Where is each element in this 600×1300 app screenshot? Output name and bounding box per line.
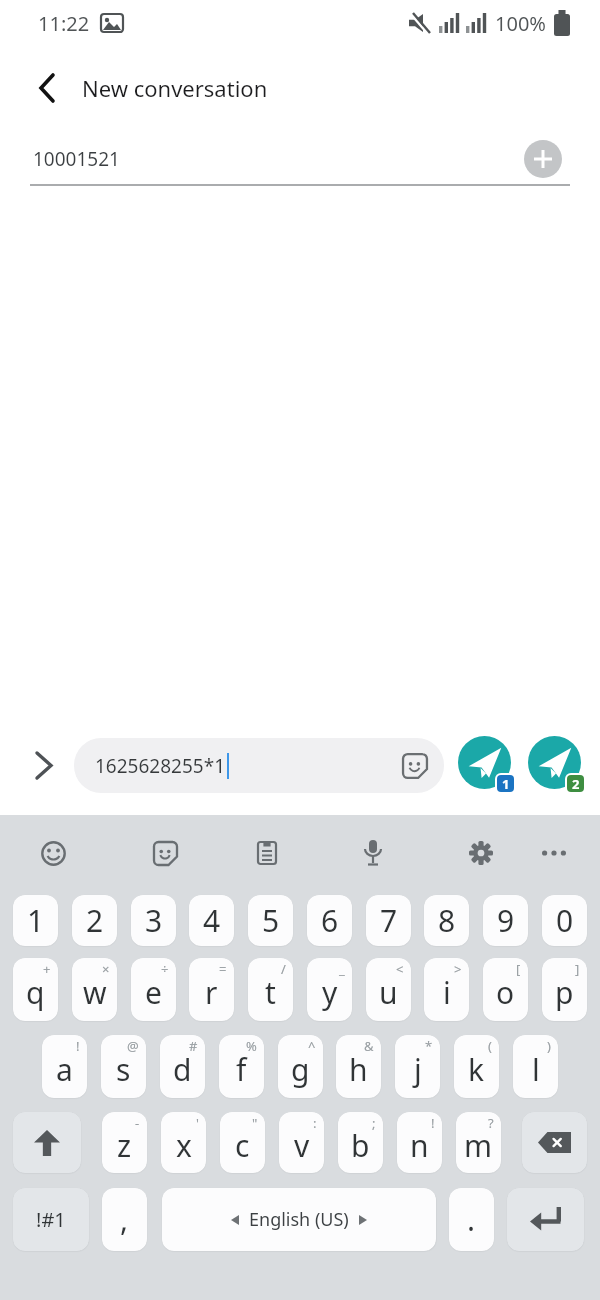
button[interactable]: & [336, 1035, 381, 1098]
staticText: r [205, 972, 218, 1013]
button[interactable]: 1625628255*1 [74, 738, 444, 793]
button[interactable]: 3 [131, 895, 176, 946]
staticText: f [236, 1049, 247, 1090]
button[interactable]: 2 [528, 736, 586, 794]
staticText: . [467, 1199, 476, 1240]
button[interactable]: " [220, 1112, 265, 1173]
button[interactable]: ! [397, 1112, 442, 1173]
button[interactable] [532, 831, 576, 875]
staticText: - [135, 1114, 140, 1132]
button[interactable] [507, 1188, 584, 1251]
staticText: c [235, 1125, 250, 1166]
button[interactable] [522, 1112, 587, 1173]
staticText: 7 [380, 900, 398, 941]
button[interactable] [13, 1112, 81, 1173]
button[interactable]: × [72, 958, 117, 1021]
button[interactable]: 2 [72, 895, 117, 946]
staticText: > [454, 960, 462, 978]
staticText: 9 [497, 900, 515, 941]
button[interactable]: 1 [13, 895, 58, 946]
staticText: t [265, 972, 276, 1013]
button[interactable] [25, 66, 69, 110]
staticText: 11:22 [38, 10, 90, 37]
staticText: : [313, 1114, 317, 1132]
button[interactable]: . [449, 1188, 494, 1251]
staticText: ^ [308, 1037, 316, 1055]
button[interactable]: < [366, 958, 411, 1021]
staticText: g [291, 1049, 310, 1090]
button[interactable] [143, 831, 187, 875]
staticText: m [464, 1125, 493, 1166]
staticText: 1 [502, 775, 510, 792]
button[interactable]: , [102, 1188, 147, 1251]
staticText: w [83, 972, 107, 1013]
button[interactable] [26, 747, 62, 783]
button[interactable] [524, 140, 562, 178]
button[interactable]: - [102, 1112, 147, 1173]
button[interactable]: ÷ [131, 958, 176, 1021]
button[interactable]: !#1 [13, 1188, 89, 1251]
button[interactable]: > [424, 958, 469, 1021]
staticText: h [349, 1049, 368, 1090]
staticText: !#1 [36, 1206, 66, 1233]
button[interactable]: 9 [483, 895, 528, 946]
staticText: _ [339, 960, 345, 978]
staticText: ) [547, 1037, 551, 1055]
staticText: & [364, 1037, 374, 1055]
button[interactable]: : [279, 1112, 324, 1173]
button[interactable]: ; [338, 1112, 383, 1173]
button[interactable]: / [248, 958, 293, 1021]
staticText: 2 [572, 775, 580, 792]
button[interactable] [459, 831, 503, 875]
staticText: " [252, 1114, 258, 1132]
staticText: p [555, 972, 574, 1013]
staticText: @ [127, 1037, 139, 1055]
button[interactable] [351, 831, 395, 875]
staticText: 0 [556, 900, 574, 941]
staticText: ' [196, 1114, 199, 1132]
staticText: ! [76, 1037, 80, 1055]
button[interactable]: 6 [307, 895, 352, 946]
button[interactable]: ? [456, 1112, 501, 1173]
button[interactable]: ! [42, 1035, 87, 1098]
staticText: New conversation [82, 73, 268, 103]
button[interactable]: 5 [248, 895, 293, 946]
button[interactable]: @ [101, 1035, 146, 1098]
staticText: ] [575, 960, 580, 978]
staticText: # [189, 1037, 198, 1055]
staticText: e [145, 972, 162, 1013]
button[interactable]: 4 [189, 895, 234, 946]
staticText: 5 [262, 900, 280, 941]
button[interactable]: 1 [458, 736, 516, 794]
staticText: 100% [495, 10, 546, 37]
staticText: j [414, 1049, 422, 1090]
button[interactable]: # [160, 1035, 205, 1098]
button[interactable]: * [395, 1035, 440, 1098]
button[interactable]: _ [307, 958, 352, 1021]
staticText: b [351, 1125, 370, 1166]
staticText: × [102, 960, 110, 978]
staticText: , [120, 1199, 129, 1240]
button[interactable] [245, 831, 289, 875]
button[interactable]: % [219, 1035, 264, 1098]
button[interactable]: ' [161, 1112, 206, 1173]
button[interactable]: ^ [278, 1035, 323, 1098]
button[interactable]: 0 [542, 895, 587, 946]
staticText: x [176, 1125, 192, 1166]
button[interactable]: 8 [424, 895, 469, 946]
button[interactable] [31, 831, 75, 875]
button[interactable]: + [13, 958, 58, 1021]
staticText: ( [488, 1037, 492, 1055]
button[interactable]: ( [454, 1035, 499, 1098]
staticText: n [410, 1125, 429, 1166]
button[interactable]: 7 [366, 895, 411, 946]
button[interactable]: English (US) [162, 1188, 436, 1251]
staticText: < [396, 960, 404, 978]
button[interactable]: ] [542, 958, 587, 1021]
button[interactable]: [ [483, 958, 528, 1021]
staticText: d [173, 1049, 192, 1090]
button[interactable]: = [189, 958, 234, 1021]
button[interactable]: ) [513, 1035, 558, 1098]
staticText: 8 [438, 900, 456, 941]
staticText: / [281, 960, 286, 978]
